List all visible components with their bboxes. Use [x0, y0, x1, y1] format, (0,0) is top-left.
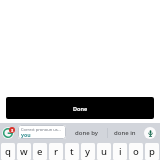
- button[interactable]: p: [145, 143, 159, 160]
- button[interactable]: t: [65, 143, 79, 160]
- button[interactable]: o: [129, 143, 143, 160]
- staticText: q: [5, 145, 11, 158]
- staticText: 3: [11, 128, 14, 133]
- staticText: w: [20, 145, 28, 158]
- staticText: i: [119, 145, 122, 158]
- staticText: u: [101, 145, 107, 158]
- button[interactable]: r: [49, 143, 63, 160]
- staticText: p: [149, 145, 155, 158]
- button[interactable]: y: [81, 143, 95, 160]
- button[interactable]: done by: [66, 123, 107, 143]
- button[interactable]: done in: [108, 123, 141, 143]
- button[interactable]: Done: [6, 97, 154, 119]
- staticText: done in: [114, 129, 136, 137]
- staticText: t: [70, 145, 74, 158]
- staticText: you: [21, 131, 31, 138]
- staticText: Correct pronoun us...: [21, 127, 61, 132]
- button[interactable]: Grammarly assistant: [1, 123, 15, 143]
- staticText: Done: [73, 105, 88, 112]
- button[interactable]: u: [97, 143, 111, 160]
- button[interactable]: w: [17, 143, 31, 160]
- button[interactable]: e: [33, 143, 47, 160]
- button[interactable]: Correct pronoun us...: [18, 125, 66, 139]
- staticText: r: [54, 145, 59, 158]
- staticText: done by: [75, 129, 98, 137]
- button[interactable]: Voice input: [141, 123, 158, 143]
- staticText: o: [133, 145, 139, 158]
- button[interactable]: i: [113, 143, 127, 160]
- staticText: y: [85, 145, 91, 158]
- staticText: e: [37, 145, 43, 158]
- button[interactable]: q: [1, 143, 15, 160]
